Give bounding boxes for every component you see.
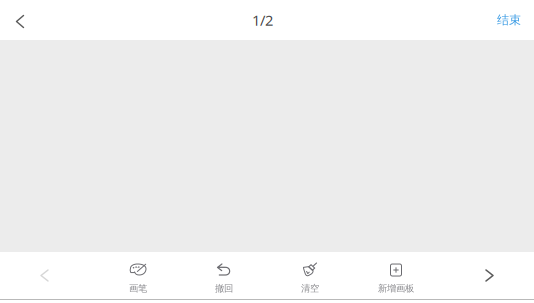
staticText: 结束	[497, 13, 521, 27]
button[interactable]: 画笔	[95, 252, 181, 299]
staticText: 画笔	[129, 282, 147, 294]
button[interactable]: 撤回	[181, 252, 267, 299]
button[interactable]: 结束	[481, 0, 534, 40]
button[interactable]: Next board	[445, 252, 534, 299]
button[interactable]: 新增画板	[353, 252, 439, 299]
staticText: 1/2	[252, 10, 273, 30]
button[interactable]: 清空	[267, 252, 353, 299]
staticText: 新增画板	[378, 282, 414, 294]
staticText: 清空	[301, 282, 319, 294]
button[interactable]: Back	[0, 0, 35, 40]
staticText: 撤回	[215, 282, 233, 294]
